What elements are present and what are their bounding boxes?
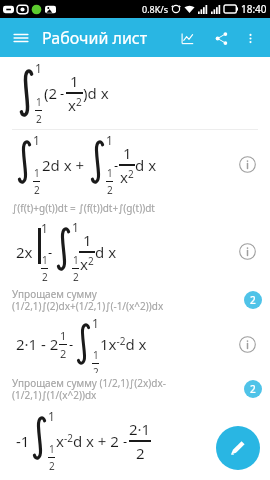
button[interactable]: 2 bbox=[244, 380, 262, 398]
staticText: Упрощаем сумму (1/2,1)∫(2x)dx- (1/2,1)∫(… bbox=[12, 376, 238, 401]
staticText: x2 bbox=[68, 95, 82, 115]
staticText: 1 bbox=[36, 95, 42, 109]
staticText: 1 bbox=[107, 166, 113, 180]
button[interactable]: Graph bbox=[174, 25, 200, 51]
staticText: - bbox=[123, 432, 128, 450]
button[interactable]: Show details bbox=[236, 153, 258, 175]
button[interactable]: -1 bbox=[0, 404, 270, 480]
staticText: 2·1 - 2 bbox=[16, 334, 59, 354]
button[interactable]: Edit bbox=[216, 426, 260, 470]
staticText: 1 bbox=[34, 166, 40, 180]
staticText: )d x bbox=[83, 83, 109, 103]
button[interactable]: 1 bbox=[0, 130, 270, 198]
staticText: 2 bbox=[93, 365, 99, 373]
staticText: 1 bbox=[42, 253, 48, 267]
staticText: 2 bbox=[250, 293, 256, 307]
staticText: 2 bbox=[36, 112, 42, 126]
staticText: 0.8K/s bbox=[142, 3, 168, 15]
staticText: 1 bbox=[106, 132, 113, 148]
staticText: 2·1 bbox=[129, 419, 151, 439]
button[interactable]: Share bbox=[208, 25, 234, 51]
staticText: 1 bbox=[92, 315, 99, 331]
button[interactable]: Open navigation menu bbox=[8, 25, 34, 51]
staticText: 1 bbox=[49, 442, 55, 456]
staticText: 1 bbox=[83, 230, 92, 250]
staticText: - bbox=[114, 156, 119, 174]
staticText: 2 bbox=[49, 459, 55, 473]
staticText: 18:40 bbox=[241, 2, 267, 16]
staticText: 2 bbox=[34, 183, 40, 197]
staticText: 1 bbox=[33, 132, 40, 148]
staticText: 1 bbox=[60, 328, 67, 343]
staticText: 2d x + bbox=[42, 155, 85, 175]
button[interactable]: 1 bbox=[0, 57, 270, 129]
button[interactable]: ∫(f(t)+g(t))dt = ∫(f(t))dt+∫(g(t))dt bbox=[0, 198, 270, 218]
staticText: 1 bbox=[41, 220, 48, 236]
staticText: 1 bbox=[93, 348, 99, 362]
staticText: 1 bbox=[73, 253, 79, 267]
staticText: - bbox=[48, 243, 53, 261]
button[interactable]: Упрощаем сумму (1/2,1)∫(2)dx+(1/2,1)∫(-1… bbox=[0, 284, 270, 315]
staticText: 1x-2d x bbox=[100, 334, 147, 354]
staticText: 1 bbox=[72, 219, 79, 235]
button[interactable]: More options bbox=[238, 26, 262, 50]
staticText: x-2d x + 2 bbox=[56, 431, 123, 451]
button[interactable]: 2 bbox=[244, 291, 262, 309]
staticText: - bbox=[60, 84, 65, 102]
staticText: 1 bbox=[48, 408, 55, 424]
staticText: 2 bbox=[42, 270, 48, 284]
staticText: x2 bbox=[80, 254, 94, 274]
button[interactable]: 2·1 - 2 bbox=[0, 315, 270, 373]
staticText: x2 bbox=[120, 167, 134, 187]
staticText: 2 bbox=[136, 443, 145, 463]
button[interactable]: Рабочий лист bbox=[42, 27, 174, 49]
staticText: 1 bbox=[123, 143, 132, 163]
staticText: Упрощаем сумму (1/2,1)∫(2)dx+(1/2,1)∫(-1… bbox=[12, 287, 238, 312]
staticText: 2 bbox=[60, 346, 67, 361]
staticText: 1 bbox=[70, 71, 79, 91]
staticText: 2x bbox=[16, 242, 33, 262]
staticText: d x bbox=[135, 155, 157, 175]
staticText: 2 bbox=[107, 183, 113, 197]
button[interactable]: 2x bbox=[0, 218, 270, 284]
staticText: -1 bbox=[16, 431, 30, 451]
staticText: ∫(f(t)+g(t))dt = ∫(f(t))dt+∫(g(t))dt bbox=[12, 201, 262, 215]
staticText: (2 bbox=[44, 83, 58, 103]
button[interactable]: Show details bbox=[236, 240, 258, 262]
staticText: d x bbox=[95, 242, 117, 262]
staticText: - bbox=[69, 335, 74, 353]
button[interactable]: Упрощаем сумму (1/2,1)∫(2x)dx- (1/2,1)∫(… bbox=[0, 373, 270, 404]
staticText: 1 bbox=[35, 60, 42, 76]
button[interactable]: Show details bbox=[236, 333, 258, 355]
staticText: 2 bbox=[250, 382, 256, 396]
staticText: 2 bbox=[73, 270, 79, 284]
